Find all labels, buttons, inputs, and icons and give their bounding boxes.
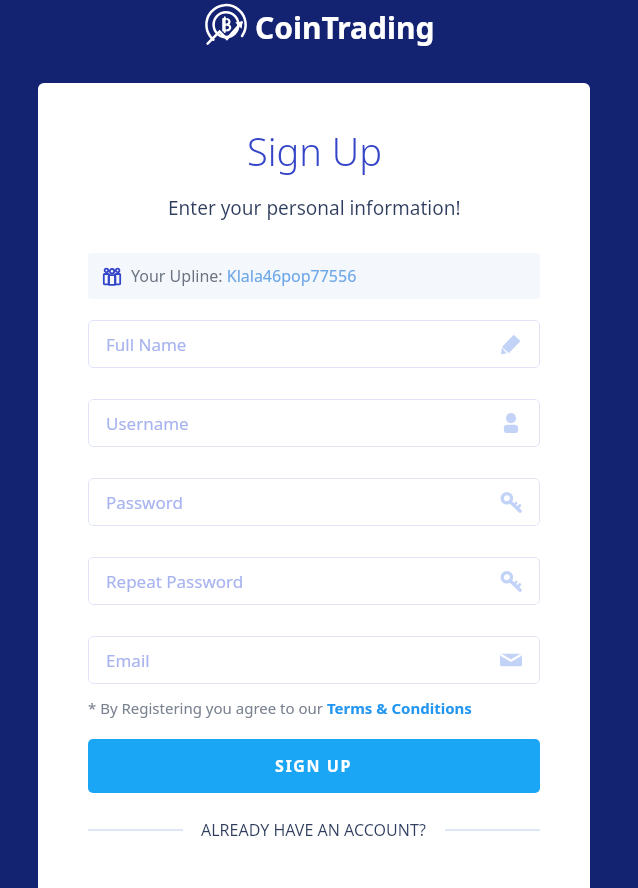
staticText: Repeat Password	[106, 570, 244, 593]
button[interactable]: * By Registering you agree to our Terms …	[88, 698, 540, 718]
staticText: * By Registering you agree to our Terms …	[88, 698, 472, 718]
staticText: CoinTrading	[255, 7, 435, 48]
button[interactable]: Email	[88, 636, 540, 684]
staticText: ALREADY HAVE AN ACCOUNT?	[201, 819, 427, 841]
other: Username	[500, 412, 522, 434]
other: Email	[500, 649, 522, 671]
button[interactable]: CoinTrading	[203, 2, 435, 52]
button[interactable]: Full Name	[88, 320, 540, 368]
other: Upline	[102, 266, 122, 286]
staticText: Sign Up	[247, 125, 382, 177]
staticText: Email	[106, 649, 150, 672]
button[interactable]: Repeat Password	[88, 557, 540, 605]
staticText: Username	[106, 412, 189, 435]
button[interactable]: Password	[88, 478, 540, 526]
button[interactable]: Username	[88, 399, 540, 447]
other: Password	[500, 491, 522, 513]
button[interactable]: SIGN UP	[88, 739, 540, 793]
other: Password	[500, 570, 522, 592]
button[interactable]: Upline	[88, 253, 540, 299]
staticText: Full Name	[106, 333, 187, 356]
staticText: Enter your personal information!	[168, 195, 461, 221]
staticText: Your Upline: Klala46pop77556	[131, 265, 357, 287]
staticText: SIGN UP	[275, 755, 353, 777]
other: Edit name	[500, 333, 522, 355]
staticText: Password	[106, 491, 183, 514]
other: CoinTrading logo	[203, 4, 249, 50]
